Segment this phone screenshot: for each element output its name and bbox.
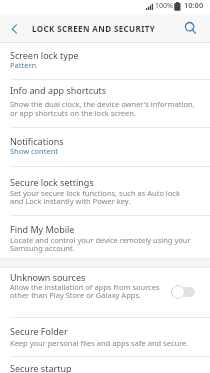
staticText: Unknown sources [10, 271, 86, 283]
staticText: Samsung account. [10, 243, 75, 253]
staticText: Screen lock type [10, 49, 79, 61]
staticText: Locate and control your device remotely … [10, 235, 191, 245]
staticText: 100% [155, 1, 173, 11]
staticText: Pattern [10, 60, 37, 70]
staticText: Show content [10, 146, 59, 156]
staticText: Keep your personal files and apps safe a… [10, 338, 189, 348]
staticText: Secure Folder [10, 325, 68, 337]
staticText: Info and app shortcuts [10, 84, 107, 96]
staticText: Set your secure lock functions, such as … [10, 188, 180, 198]
staticText: other than Play Store or Galaxy Apps. [10, 290, 141, 300]
staticText: Secure lock settings [10, 176, 94, 188]
staticText: Allow the installation of apps from sour… [10, 282, 160, 292]
staticText: Find My Mobile [10, 223, 75, 235]
staticText: Secure startup [10, 362, 72, 373]
staticText: Show the dual clock, the device owner's … [10, 99, 195, 109]
staticText: and Lock instantly with Power key. [10, 196, 131, 206]
staticText: 10:00 [184, 0, 204, 10]
staticText: LOCK SCREEN AND SECURITY [32, 23, 156, 34]
staticText: or app shortcuts on the lock screen. [10, 108, 136, 118]
staticText: Notifications [10, 135, 64, 147]
